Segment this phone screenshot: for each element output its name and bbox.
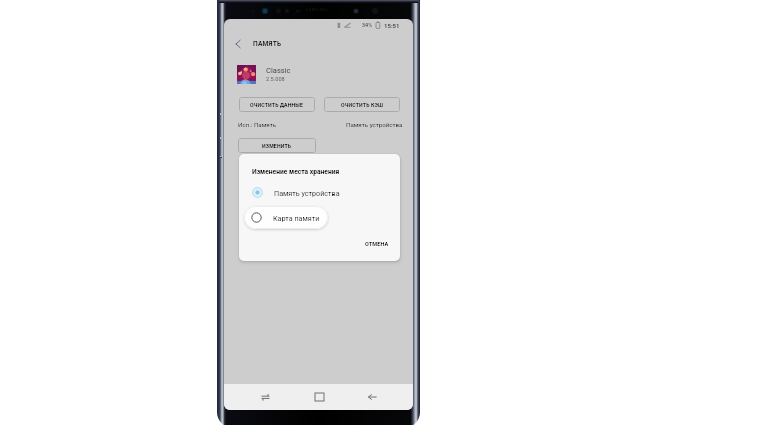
staticText: 15:51 xyxy=(384,22,400,29)
button[interactable]: ИЗМЕНИТЬ xyxy=(238,138,316,153)
button[interactable]: ОЧИСТИТЬ ДАННЫЕ xyxy=(239,97,315,112)
button[interactable]: Back xyxy=(226,32,250,56)
staticText: ИЗМЕНИТЬ xyxy=(262,143,292,149)
staticText: Карта памяти xyxy=(273,214,320,222)
staticText: SAMSUNG xyxy=(306,8,328,12)
button[interactable]: Home xyxy=(299,384,339,410)
staticText: ОТМЕНА xyxy=(365,241,389,247)
button[interactable]: ОЧИСТИТЬ КЭШ xyxy=(324,97,400,112)
button[interactable]: Recents xyxy=(245,384,285,410)
staticText: Изменение места хранения xyxy=(252,168,340,176)
staticText: ОЧИСТИТЬ ДАННЫЕ xyxy=(250,102,304,108)
staticText: ПАМЯТЬ xyxy=(253,40,282,48)
staticText: ОЧИСТИТЬ КЭШ xyxy=(341,102,384,108)
staticText: Classic xyxy=(266,66,291,75)
button[interactable]: ОТМЕНА xyxy=(361,238,393,250)
staticText: Память устройства xyxy=(346,121,403,128)
staticText: Исп.: Память xyxy=(238,121,276,128)
button[interactable]: Память устройства xyxy=(252,186,372,199)
staticText: Память устройства xyxy=(274,189,340,197)
button[interactable]: Карта памяти xyxy=(244,206,328,229)
staticText: 2.5.008 xyxy=(266,76,285,83)
button[interactable]: Back xyxy=(352,384,392,410)
staticText: 34% xyxy=(362,22,373,28)
